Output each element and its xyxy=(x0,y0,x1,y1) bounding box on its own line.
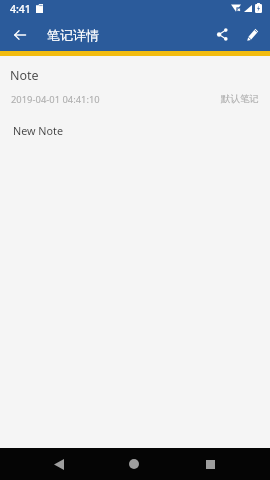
button[interactable]: Recent apps xyxy=(195,449,225,479)
button[interactable]: Share xyxy=(209,21,236,48)
button[interactable]: Home xyxy=(119,449,149,479)
button[interactable]: Note xyxy=(0,56,270,448)
staticText: 笔记详情 xyxy=(47,27,99,43)
button[interactable]: Navigate up xyxy=(6,21,33,48)
staticText: New Note xyxy=(13,123,64,138)
button[interactable]: Edit xyxy=(239,21,266,48)
staticText: Note xyxy=(10,67,39,84)
staticText: 默认笔记 xyxy=(221,93,259,105)
staticText: 4:41 xyxy=(10,2,31,16)
staticText: 2019-04-01 04:41:10 xyxy=(11,93,100,106)
button[interactable]: Back xyxy=(44,449,74,479)
